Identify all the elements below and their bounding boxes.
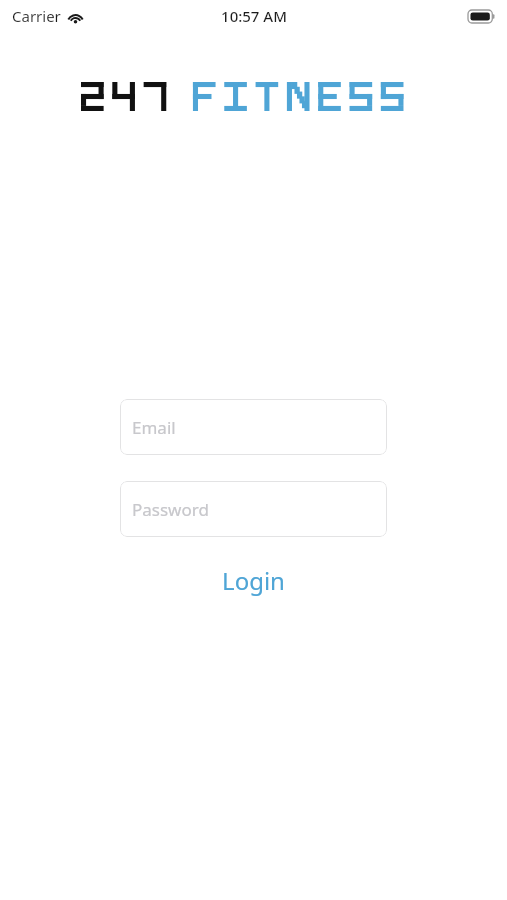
button[interactable]: Email <box>120 399 387 455</box>
staticText: Password <box>132 498 209 521</box>
staticText: Login <box>222 564 285 597</box>
staticText: Carrier <box>12 6 61 26</box>
button[interactable]: Login <box>120 559 387 601</box>
button[interactable]: Password <box>120 481 387 537</box>
staticText: Email <box>132 416 176 439</box>
staticText: 10:57 AM <box>221 6 287 26</box>
